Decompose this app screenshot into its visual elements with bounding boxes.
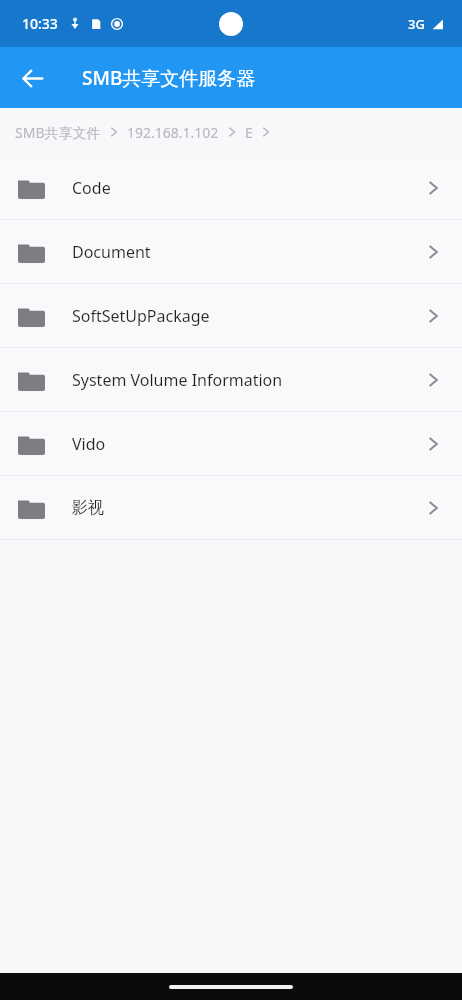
button[interactable]: Code (0, 156, 462, 219)
button[interactable]: Vido (0, 412, 462, 475)
staticText: E (245, 123, 253, 142)
button[interactable]: SoftSetUpPackage (0, 284, 462, 347)
staticText: Vido (72, 433, 426, 455)
staticText: 3G (408, 15, 425, 33)
button[interactable]: E (244, 121, 254, 144)
button[interactable]: Document (0, 220, 462, 283)
button[interactable]: 192.168.1.102 (126, 121, 220, 144)
staticText: System Volume Information (72, 369, 426, 391)
staticText: 10:33 (22, 14, 58, 33)
staticText: Code (72, 177, 426, 199)
button[interactable]: System Volume Information (0, 348, 462, 411)
staticText: SoftSetUpPackage (72, 305, 426, 327)
button[interactable]: 影视 (0, 476, 462, 539)
staticText: 影视 (72, 498, 426, 518)
button[interactable]: SMB共享文件 (14, 121, 102, 144)
staticText: SMB共享文件 (15, 123, 101, 142)
staticText: SMB共享文件服务器 (82, 65, 256, 91)
button[interactable]: Back (8, 54, 56, 102)
staticText: 192.168.1.102 (127, 123, 219, 142)
staticText: Document (72, 241, 426, 263)
